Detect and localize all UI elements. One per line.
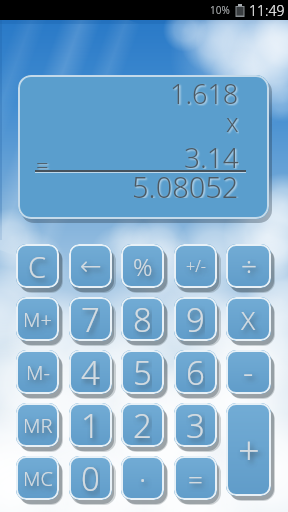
staticText: -: [243, 350, 254, 394]
button[interactable]: ←: [69, 244, 112, 288]
button[interactable]: MC: [16, 456, 59, 500]
staticText: 5: [133, 350, 152, 394]
button[interactable]: M+: [16, 297, 59, 341]
staticText: M+: [23, 306, 52, 333]
button[interactable]: MR: [16, 403, 59, 447]
staticText: 7: [81, 297, 100, 341]
staticText: x: [226, 105, 239, 136]
staticText: C: [28, 247, 47, 286]
staticText: 4: [81, 350, 100, 394]
staticText: 3: [186, 403, 205, 447]
button[interactable]: %: [121, 244, 164, 288]
button[interactable]: ·: [121, 456, 164, 500]
button[interactable]: -: [226, 350, 271, 394]
staticText: %: [133, 250, 153, 283]
button[interactable]: 2: [121, 403, 164, 447]
staticText: M-: [26, 359, 50, 386]
button[interactable]: 5: [121, 350, 164, 394]
staticText: MC: [23, 465, 53, 492]
staticText: 6: [186, 350, 205, 394]
staticText: 1: [81, 403, 100, 447]
staticText: =: [36, 149, 49, 179]
staticText: MR: [23, 412, 53, 439]
staticText: 0: [81, 456, 100, 500]
button[interactable]: 0: [69, 456, 112, 500]
staticText: ÷: [241, 247, 257, 285]
staticText: 5.08052: [132, 167, 239, 198]
staticText: ←: [80, 251, 102, 281]
staticText: X: [241, 302, 256, 337]
staticText: 9: [186, 297, 205, 341]
staticText: ·: [139, 458, 147, 499]
button[interactable]: X: [226, 297, 271, 341]
staticText: 11:49: [249, 1, 285, 20]
button[interactable]: 8: [121, 297, 164, 341]
button[interactable]: 4: [69, 350, 112, 394]
staticText: 8: [133, 297, 152, 341]
staticText: 2: [133, 403, 152, 447]
button[interactable]: =: [174, 456, 217, 500]
staticText: 10%: [210, 3, 230, 17]
button[interactable]: +: [226, 403, 271, 496]
button[interactable]: 6: [174, 350, 217, 394]
button[interactable]: C: [16, 244, 59, 288]
button[interactable]: M-: [16, 350, 59, 394]
button[interactable]: 7: [69, 297, 112, 341]
staticText: 3.14: [184, 138, 239, 169]
button[interactable]: +/-: [174, 244, 217, 288]
button[interactable]: 3: [174, 403, 217, 447]
staticText: 1.618: [170, 75, 239, 106]
staticText: +/-: [186, 255, 206, 277]
staticText: =: [188, 461, 203, 496]
button[interactable]: 9: [174, 297, 217, 341]
button[interactable]: ÷: [226, 244, 271, 288]
staticText: +: [238, 424, 260, 476]
button[interactable]: 1: [69, 403, 112, 447]
